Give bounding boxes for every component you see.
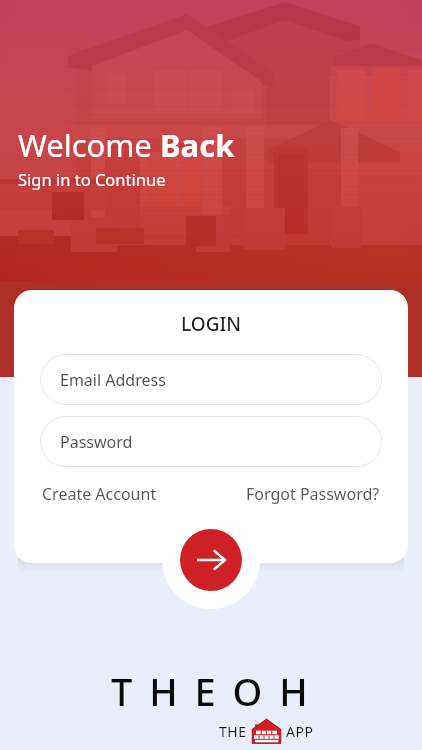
- staticText: Sign in to Continue: [18, 168, 166, 190]
- staticText: APP: [286, 722, 314, 741]
- staticText: Create Account: [42, 483, 157, 505]
- button[interactable]: Sign in: [180, 529, 242, 591]
- staticText: Forgot Password?: [246, 483, 380, 505]
- button[interactable]: Forgot Password?: [242, 480, 384, 508]
- staticText: T H E O H: [111, 665, 312, 717]
- staticText: Back: [160, 124, 235, 166]
- button[interactable]: Password: [40, 416, 382, 467]
- staticText: Welcome: [18, 124, 160, 166]
- staticText: Email Address: [60, 369, 166, 391]
- staticText: Password: [60, 431, 133, 453]
- button[interactable]: Create Account: [38, 480, 161, 508]
- button[interactable]: Email Address: [40, 354, 382, 405]
- staticText: THE: [219, 722, 247, 741]
- staticText: LOGIN: [14, 311, 408, 337]
